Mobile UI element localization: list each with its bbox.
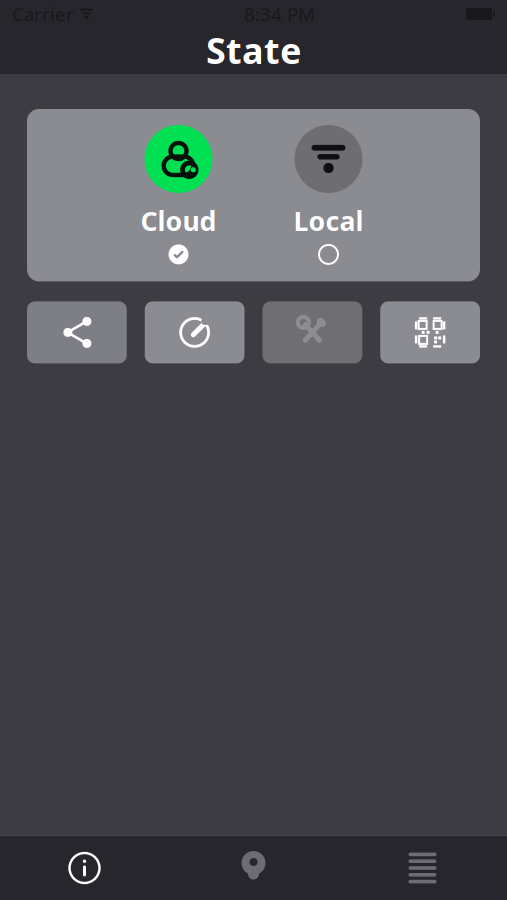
staticText: State xyxy=(206,26,301,74)
button[interactable]: Local xyxy=(253,125,403,265)
button[interactable]: Tools xyxy=(262,301,362,363)
button[interactable]: Edit xyxy=(145,301,245,363)
staticText: 8:34 PM xyxy=(244,2,315,26)
staticText: Cloud xyxy=(140,203,216,238)
button[interactable]: Info xyxy=(0,836,169,900)
button[interactable]: Cloud xyxy=(103,125,253,265)
button[interactable]: Menu xyxy=(338,836,507,900)
staticText: Local xyxy=(293,203,363,238)
button[interactable]: Share xyxy=(27,301,127,363)
button[interactable]: Map xyxy=(169,836,338,900)
button[interactable]: QR Code xyxy=(380,301,480,363)
staticText: Carrier xyxy=(12,2,74,26)
